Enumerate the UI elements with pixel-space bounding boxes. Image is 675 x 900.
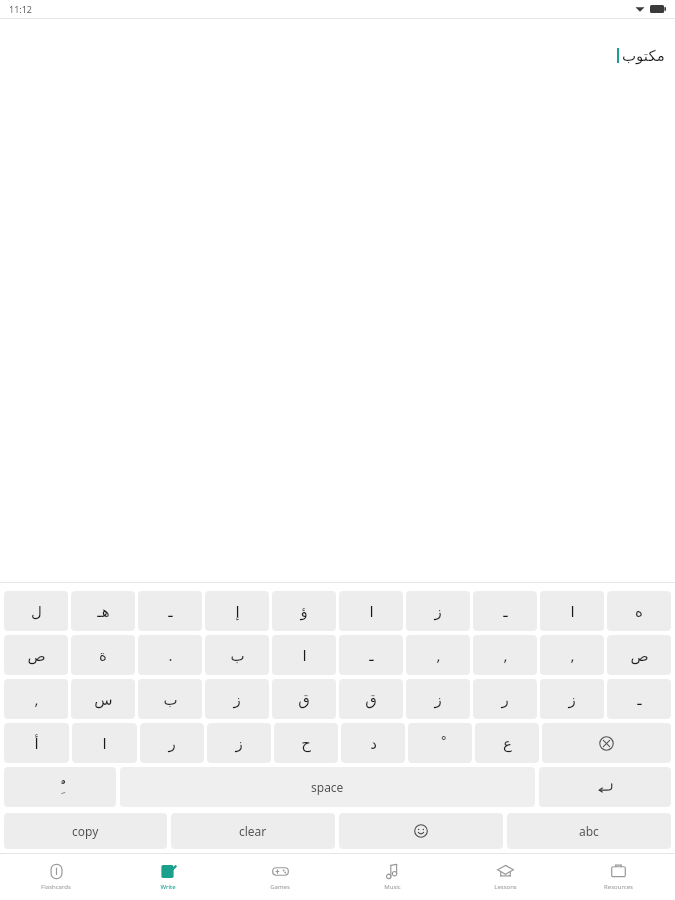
button[interactable]: ب [205,635,269,675]
staticText: ز [235,735,243,752]
staticText: ؤ [300,603,308,620]
staticText: Write [160,883,176,891]
staticText: clear [239,823,267,839]
button[interactable]: ْ [408,723,472,763]
button[interactable]: ز [406,591,470,631]
staticText: , [436,645,441,665]
staticText: ص [630,647,649,664]
staticText: ز [568,691,576,708]
button[interactable]: , [406,635,470,675]
button[interactable]: , [540,635,604,675]
staticText: Flashcards [41,883,71,891]
staticText: space [311,779,344,795]
button[interactable]: أ [4,723,69,763]
button[interactable]: ق [339,679,403,719]
button[interactable]: Symbols [4,767,116,807]
button[interactable]: إ [205,591,269,631]
button[interactable]: ز [406,679,470,719]
button[interactable]: ز [207,723,271,763]
button[interactable]: ر [140,723,204,763]
staticText: Games [270,883,290,891]
button[interactable]: Flashcards [0,854,112,900]
button[interactable]: ـ [607,679,671,719]
staticText: ل [31,603,42,620]
button[interactable]: ص [4,635,68,675]
staticText: , [570,645,575,665]
staticText: , [34,689,39,709]
button[interactable]: Lessons [449,854,562,900]
staticText: هـ [97,603,110,620]
button[interactable]: ـ [473,591,537,631]
staticText: ا [570,603,575,620]
staticText: 11:12 [9,3,33,15]
button[interactable]: abc [507,813,671,849]
button[interactable]: هـ [71,591,135,631]
button[interactable]: ر [473,679,537,719]
button[interactable]: Enter [539,767,671,807]
button[interactable]: ا [272,635,336,675]
button[interactable]: مكتوب [0,19,675,582]
staticText: ـ [503,603,508,620]
button[interactable]: ا [339,591,403,631]
staticText: abc [579,823,599,839]
staticText: ـ [369,647,374,664]
button[interactable]: ـ [339,635,403,675]
button[interactable]: Emoji [339,813,503,849]
staticText: أ [34,735,39,752]
staticText: Resources [604,883,633,891]
staticText: ق [298,691,310,708]
staticText: ر [168,735,176,752]
button[interactable]: ؤ [272,591,336,631]
button[interactable]: Games [224,854,336,900]
button[interactable]: space [120,767,535,807]
button[interactable]: ا [72,723,137,763]
staticText: س [94,691,113,708]
staticText: ا [102,735,107,752]
staticText: مكتوب [622,47,665,64]
button[interactable]: ص [607,635,671,675]
button[interactable]: ا [540,591,604,631]
button[interactable]: س [71,679,135,719]
staticText: ب [230,647,245,664]
staticText: copy [72,823,99,839]
staticText: ق [365,691,377,708]
button[interactable]: Resources [562,854,675,900]
staticText: ب [163,691,178,708]
button[interactable]: , [473,635,537,675]
staticText: ـ [637,691,642,708]
button[interactable]: Music [336,854,449,900]
staticText: ـ [168,603,173,620]
button[interactable]: ح [274,723,338,763]
button[interactable]: ه [607,591,671,631]
button[interactable]: . [138,635,202,675]
button[interactable]: clear [171,813,335,849]
staticText: ا [302,647,307,664]
button[interactable]: ز [540,679,604,719]
staticText: ز [434,603,442,620]
button[interactable]: ـ [138,591,202,631]
staticText: ا [369,603,374,620]
staticText: Lessons [494,883,517,891]
button[interactable]: د [341,723,405,763]
staticText: ه [635,603,643,620]
button[interactable]: ز [205,679,269,719]
button[interactable]: , [4,679,68,719]
button[interactable]: ق [272,679,336,719]
staticText: ز [434,691,442,708]
button[interactable]: ب [138,679,202,719]
button[interactable]: copy [4,813,167,849]
button[interactable]: ل [4,591,68,631]
staticText: ح [301,735,311,752]
staticText: ة [99,647,107,664]
staticText: Music [384,883,401,891]
button[interactable]: Write [112,854,224,900]
staticText: إ [235,603,240,620]
staticText: , [503,645,508,665]
button[interactable]: Backspace [542,723,671,763]
button[interactable]: ع [475,723,539,763]
button[interactable]: ة [71,635,135,675]
staticText: ع [503,735,512,752]
staticText: ص [27,647,46,664]
staticText: د [370,735,377,752]
staticText: ز [233,691,241,708]
